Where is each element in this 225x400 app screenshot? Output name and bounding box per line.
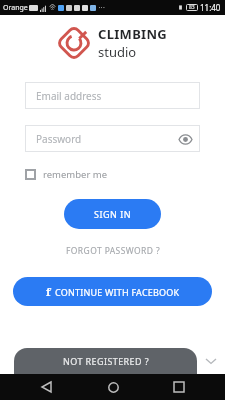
- staticText: SIGN IN: [94, 208, 132, 220]
- button[interactable]: FORGOT PASSWORD ?: [60, 242, 166, 260]
- staticText: Password: [36, 132, 82, 146]
- button[interactable]: NOT REGISTERED ?: [14, 348, 197, 374]
- staticText: CONTINUE WITH FACEBOOK: [55, 286, 180, 298]
- staticText: remember me: [43, 168, 108, 181]
- button[interactable]: Show password: [176, 130, 194, 148]
- staticText: CLIMBING: [98, 25, 168, 43]
- staticText: Orange: [3, 3, 28, 13]
- button[interactable]: Expand: [203, 353, 219, 369]
- staticText: Email address: [36, 89, 102, 103]
- staticText: NOT REGISTERED ?: [63, 355, 149, 367]
- staticText: FORGOT PASSWORD ?: [66, 245, 160, 257]
- button[interactable]: f: [13, 277, 212, 306]
- button[interactable]: SIGN IN: [64, 199, 161, 229]
- button[interactable]: Email address: [25, 82, 200, 109]
- button[interactable]: Recent apps: [169, 377, 189, 397]
- button[interactable]: Home: [103, 377, 123, 397]
- button[interactable]: Back: [36, 377, 56, 397]
- staticText: studio: [98, 43, 137, 61]
- button[interactable]: Password: [25, 125, 200, 152]
- staticText: 11:40: [200, 2, 221, 13]
- staticText: f: [46, 284, 51, 299]
- staticText: ⋯: [98, 4, 105, 12]
- staticText: 83: [189, 4, 195, 11]
- button[interactable]: remember me: [25, 168, 108, 181]
